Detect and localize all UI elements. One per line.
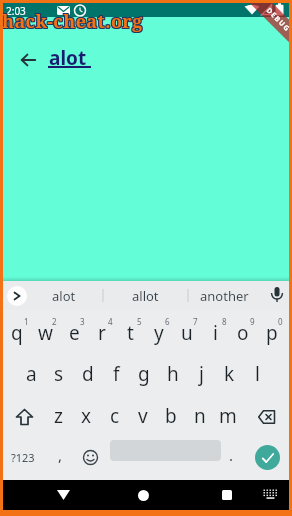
- staticText: s: [54, 361, 64, 387]
- staticText: m: [219, 403, 237, 429]
- staticText: l: [255, 361, 260, 387]
- button[interactable]: h: [159, 360, 187, 388]
- button[interactable]: u: [173, 319, 201, 347]
- staticText: another: [200, 287, 249, 305]
- staticText: e: [69, 320, 80, 346]
- button[interactable]: [7, 286, 27, 306]
- staticText: g: [138, 361, 150, 387]
- staticText: a: [26, 361, 37, 387]
- button[interactable]: f: [102, 360, 130, 388]
- staticText: n: [194, 403, 206, 429]
- staticText: c: [110, 403, 120, 429]
- button[interactable]: [253, 403, 281, 431]
- staticText: DEBUG: [264, 6, 292, 35]
- staticText: 4: [108, 316, 113, 327]
- staticText: hack-cheat.org: [1, 9, 142, 34]
- staticText: ,: [58, 445, 63, 465]
- staticText: ?123: [11, 450, 35, 465]
- staticText: hack-cheat.org: [3, 10, 144, 35]
- button[interactable]: c: [101, 402, 129, 430]
- staticText: 9: [250, 316, 255, 327]
- staticText: 7: [193, 316, 198, 327]
- button[interactable]: b: [157, 402, 185, 430]
- staticText: 1: [24, 316, 29, 327]
- staticText: r: [98, 320, 106, 346]
- staticText: b: [165, 403, 177, 429]
- button[interactable]: .: [217, 441, 245, 469]
- button[interactable]: s: [45, 360, 73, 388]
- staticText: alot: [49, 45, 87, 71]
- staticText: x: [81, 403, 92, 429]
- button[interactable]: [76, 443, 104, 471]
- button[interactable]: o: [229, 319, 257, 347]
- button[interactable]: allot: [104, 281, 186, 310]
- staticText: 2: [52, 316, 57, 327]
- button[interactable]: k: [215, 360, 243, 388]
- staticText: o: [237, 320, 249, 346]
- staticText: v: [138, 403, 148, 429]
- staticText: k: [224, 361, 235, 387]
- button[interactable]: l: [243, 360, 271, 388]
- staticText: hack-cheat.org: [3, 8, 144, 33]
- staticText: w: [38, 320, 53, 346]
- button[interactable]: ,: [46, 441, 74, 469]
- button[interactable]: [10, 403, 38, 431]
- button[interactable]: [14, 46, 42, 74]
- staticText: 0: [278, 316, 283, 327]
- button[interactable]: q: [3, 319, 31, 347]
- button[interactable]: a: [17, 360, 45, 388]
- staticText: i: [213, 320, 218, 346]
- staticText: 6: [165, 316, 170, 327]
- staticText: hack-cheat.org: [3, 9, 144, 34]
- staticText: t: [127, 320, 134, 346]
- button[interactable]: g: [130, 360, 158, 388]
- button[interactable]: n: [186, 402, 214, 430]
- staticText: allot: [132, 287, 159, 305]
- staticText: .: [229, 445, 234, 465]
- staticText: hack-cheat.org: [2, 9, 143, 34]
- staticText: z: [54, 403, 63, 429]
- button[interactable]: y: [145, 319, 173, 347]
- button[interactable]: t: [116, 319, 144, 347]
- button[interactable]: [49, 481, 77, 509]
- button[interactable]: another: [189, 281, 259, 310]
- staticText: y: [154, 320, 164, 346]
- button[interactable]: i: [201, 319, 229, 347]
- button[interactable]: z: [44, 402, 72, 430]
- staticText: f: [113, 361, 120, 387]
- button[interactable]: v: [129, 402, 157, 430]
- button[interactable]: [213, 481, 241, 509]
- button[interactable]: p: [258, 319, 286, 347]
- staticText: 5: [137, 316, 142, 327]
- staticText: hack-cheat.org: [2, 8, 143, 33]
- staticText: d: [82, 361, 94, 387]
- button[interactable]: ?123: [9, 443, 37, 471]
- staticText: hack-cheat.org: [1, 8, 142, 33]
- button[interactable]: alot: [30, 281, 97, 310]
- staticText: h: [167, 361, 179, 387]
- button[interactable]: [129, 481, 157, 509]
- button[interactable]: r: [88, 319, 116, 347]
- staticText: hack-cheat.org: [1, 10, 142, 35]
- staticText: alot: [52, 287, 76, 305]
- staticText: 3: [80, 316, 85, 327]
- button[interactable]: x: [72, 402, 100, 430]
- staticText: u: [181, 320, 193, 346]
- button[interactable]: e: [60, 319, 88, 347]
- staticText: j: [199, 361, 204, 387]
- button[interactable]: d: [74, 360, 102, 388]
- staticText: q: [11, 320, 23, 346]
- staticText: p: [266, 320, 278, 346]
- staticText: 2:03: [6, 4, 26, 18]
- button[interactable]: w: [31, 319, 59, 347]
- button[interactable]: [255, 445, 280, 470]
- button[interactable]: [259, 484, 281, 504]
- staticText: hack-cheat.org: [2, 10, 143, 35]
- button[interactable]: j: [187, 360, 215, 388]
- staticText: 8: [222, 316, 227, 327]
- button[interactable]: m: [214, 402, 242, 430]
